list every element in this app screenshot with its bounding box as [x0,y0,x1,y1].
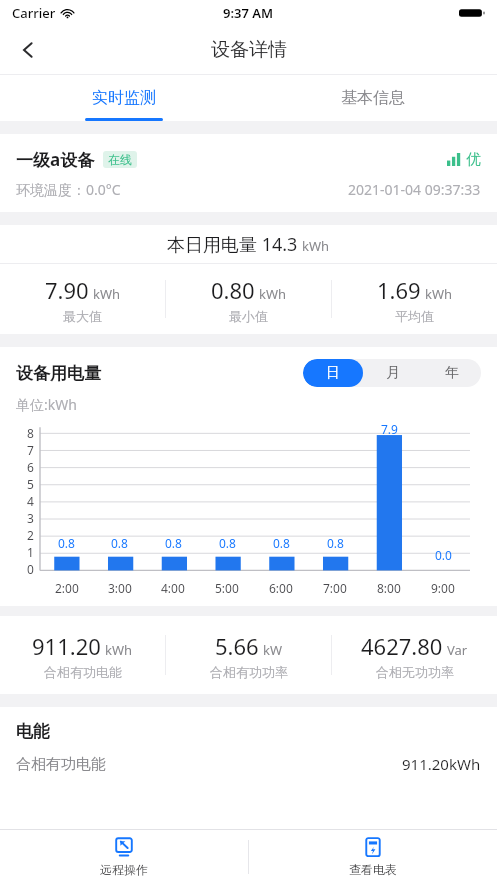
staticText: kWh [259,285,287,303]
staticText: 0.8 [219,535,236,551]
staticText: 3 [27,510,34,526]
staticText: 0.8 [327,535,344,551]
staticText: 0.8 [165,535,182,551]
staticText: 911.20kWh [402,754,481,774]
staticText: 设备用电量 [16,363,101,384]
staticText: 5:00 [215,580,239,596]
staticText: 6 [27,459,34,475]
button[interactable]: 查看电表 [249,830,497,883]
staticText: 基本信息 [341,88,405,108]
staticText: 单位:kWh [16,395,77,414]
staticText: kWh [93,285,121,303]
staticText: 4 [27,493,34,509]
staticText: 日 [326,364,340,382]
staticText: 0.8 [58,535,75,551]
staticText: 1 [27,544,34,560]
staticText: 最小值 [229,308,268,324]
staticText: 2:00 [55,580,79,596]
staticText: 0.80 [211,275,255,305]
staticText: 电能 [16,721,50,742]
staticText: 4627.80 [361,631,443,661]
staticText: 7 [27,442,34,458]
staticText: 0.0 [435,547,452,563]
staticText: 9:37 AM [223,4,274,22]
button[interactable]: 实时监测 [0,75,248,121]
staticText: 2021-01-04 09:37:33 [348,180,481,199]
staticText: 911.20 [32,631,101,661]
staticText: 合相有功电能 [16,755,106,774]
button[interactable]: 日 [303,359,363,387]
staticText: 平均值 [395,308,434,324]
staticText: 4:00 [161,580,185,596]
staticText: 优 [466,150,481,169]
staticText: 2 [27,527,34,543]
staticText: 月 [386,364,400,382]
button[interactable]: Back [6,28,50,72]
staticText: kWh [302,237,330,255]
staticText: 9:00 [431,580,455,596]
button[interactable]: 远程操作 [0,830,248,883]
staticText: Carrier [12,4,56,22]
staticText: Var [447,641,468,659]
staticText: kW [263,641,283,659]
staticText: 合相无功功率 [376,664,454,680]
staticText: 3:00 [108,580,132,596]
staticText: kWh [105,641,133,659]
button[interactable]: 年 [422,359,481,387]
staticText: 查看电表 [349,862,397,877]
staticText: 7.90 [45,275,89,305]
staticText: 实时监测 [92,88,156,108]
staticText: 最大值 [63,308,102,324]
staticText: 0 [27,561,34,577]
staticText: 设备详情 [211,38,287,62]
staticText: 7.9 [381,421,398,437]
staticText: 8 [27,425,34,441]
staticText: 1.69 [377,275,421,305]
staticText: 6:00 [269,580,293,596]
staticText: 合相有功功率 [210,664,288,680]
staticText: 5.66 [215,631,259,661]
staticText: kWh [425,285,453,303]
staticText: 合相有功电能 [44,664,122,680]
staticText: 远程操作 [100,862,148,877]
button[interactable]: 基本信息 [248,75,497,121]
button[interactable]: 月 [363,359,422,387]
staticText: 环境温度：0.0°C [16,180,121,199]
staticText: 5 [27,476,34,492]
staticText: 0.8 [273,535,290,551]
staticText: 7:00 [323,580,347,596]
staticText: 本日用电量 14.3 [167,232,298,257]
staticText: 一级a设备 [16,148,95,171]
staticText: 年 [445,364,459,382]
staticText: 0.8 [111,535,128,551]
staticText: 在线 [108,152,132,167]
staticText: 8:00 [377,580,401,596]
